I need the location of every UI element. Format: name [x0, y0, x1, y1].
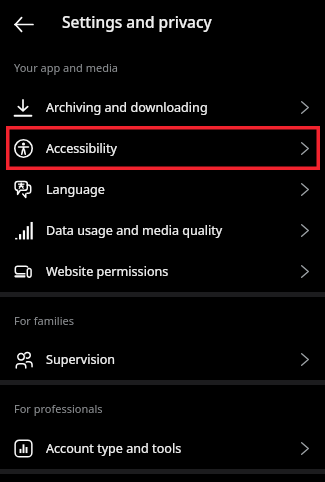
- staticText: For families: [14, 313, 74, 328]
- staticText: Accessibility: [46, 140, 118, 157]
- button[interactable]: Language: [0, 169, 325, 210]
- staticText: Supervision: [46, 351, 116, 368]
- button[interactable]: Accessibility: [0, 128, 325, 169]
- button[interactable]: Supervision: [0, 339, 325, 380]
- button[interactable]: Back: [1, 2, 45, 46]
- staticText: Settings and privacy: [62, 11, 212, 32]
- button[interactable]: Archiving and downloading: [0, 87, 325, 128]
- button[interactable]: Account type and tools: [0, 428, 325, 469]
- staticText: Language: [46, 181, 105, 198]
- staticText: Data usage and media quality: [46, 222, 223, 239]
- button[interactable]: Website permissions: [0, 251, 325, 292]
- staticText: Archiving and downloading: [46, 99, 208, 116]
- staticText: Your app and media: [14, 60, 118, 75]
- staticText: For professionals: [14, 401, 103, 416]
- staticText: Account type and tools: [46, 440, 182, 457]
- staticText: Website permissions: [46, 263, 169, 280]
- button[interactable]: Data usage and media quality: [0, 210, 325, 251]
